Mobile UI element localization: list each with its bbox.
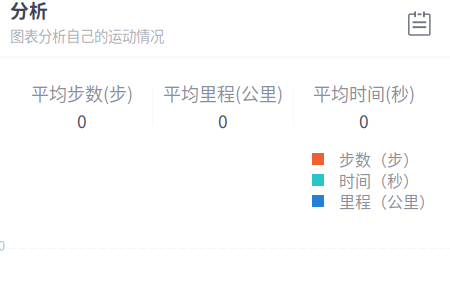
button[interactable]: 里程（公里） <box>312 195 442 207</box>
staticText: 平均时间(秒) <box>313 80 415 106</box>
staticText: 图表分析自己的运动情况 <box>10 25 164 46</box>
staticText: 0 <box>359 108 369 133</box>
button[interactable]: 步数（步） <box>312 153 442 165</box>
staticText: 时间（秒） <box>339 168 419 192</box>
staticText: 平均步数(步) <box>31 80 133 106</box>
staticText: 0 <box>218 108 228 133</box>
staticText: 分析 <box>10 0 48 23</box>
staticText: 0 <box>77 108 87 133</box>
staticText: 步数（步） <box>339 147 419 171</box>
staticText: 里程（公里） <box>339 189 435 213</box>
staticText: 0 <box>0 236 5 254</box>
button[interactable]: 运动记录 <box>403 5 436 41</box>
staticText: 平均里程(公里) <box>163 80 283 106</box>
button[interactable]: 时间（秒） <box>312 174 442 186</box>
